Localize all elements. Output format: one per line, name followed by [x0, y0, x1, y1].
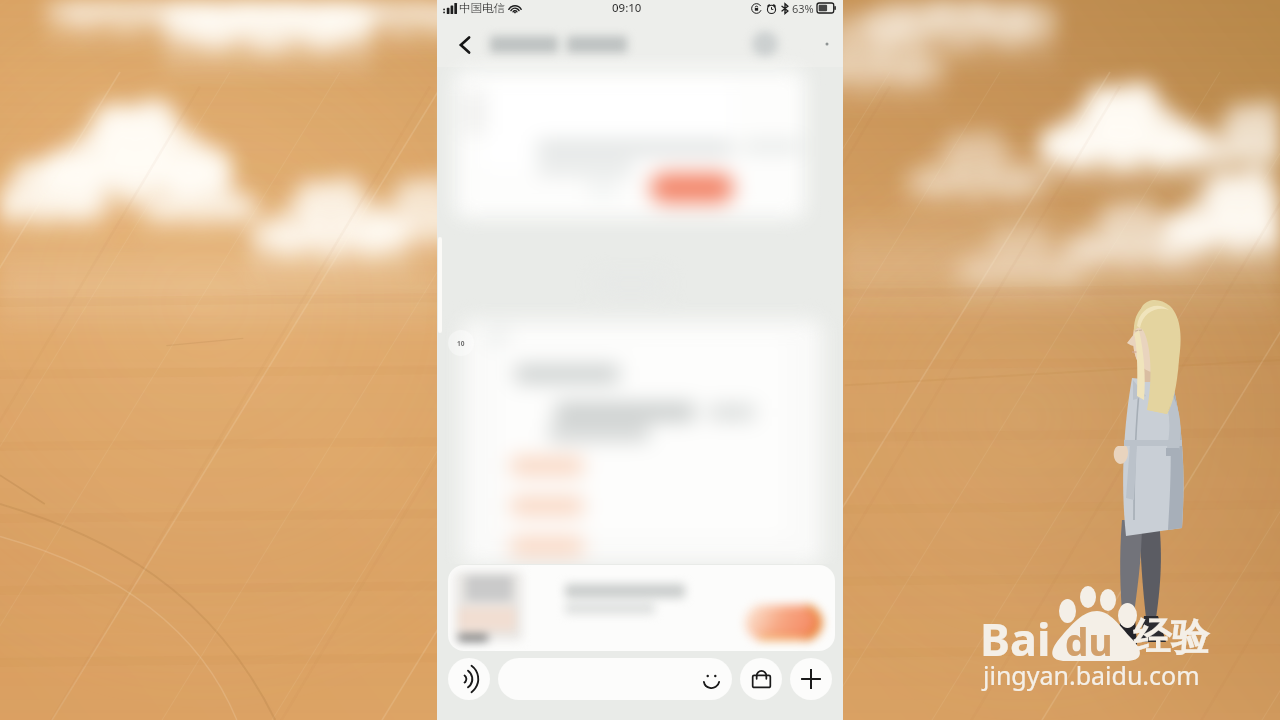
staticText: 经验	[1133, 613, 1209, 661]
button[interactable]: Shop message	[462, 320, 822, 565]
button[interactable]: Emoji	[698, 666, 724, 692]
staticText: Bai	[980, 608, 1051, 669]
staticText: 63%	[792, 1, 814, 16]
staticText: jingyan.baidu.com	[983, 658, 1200, 692]
staticText: 09:10	[612, 0, 642, 16]
button[interactable]: Shop	[740, 658, 782, 700]
button[interactable]: Back	[451, 31, 479, 59]
button[interactable]: Voice message	[448, 658, 490, 700]
button[interactable]: More options	[821, 39, 833, 51]
button[interactable]: More	[790, 658, 832, 700]
button[interactable]: Order message	[455, 70, 805, 218]
button[interactable]: Product card	[448, 565, 835, 651]
button[interactable]: Emoji	[498, 658, 732, 700]
staticText: 中国电信	[459, 1, 505, 15]
staticText: 10	[457, 339, 465, 348]
staticText: du	[1065, 616, 1113, 666]
button[interactable]: Open panel	[448, 330, 474, 356]
